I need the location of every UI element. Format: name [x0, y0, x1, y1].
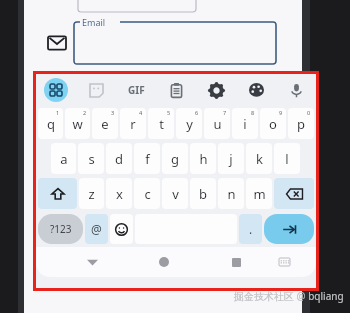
- button[interactable]: d: [106, 143, 132, 174]
- button[interactable]: e: [92, 108, 118, 139]
- button[interactable]: w: [65, 108, 90, 139]
- button[interactable]: Hide keyboard: [272, 247, 296, 277]
- button[interactable]: Apps: [36, 74, 76, 106]
- other: Email: [48, 34, 66, 52]
- staticText: s: [88, 150, 95, 168]
- staticText: 7: [223, 109, 227, 116]
- button[interactable]: t: [148, 108, 174, 139]
- button[interactable]: h: [190, 143, 216, 174]
- staticText: 3: [111, 109, 115, 116]
- button[interactable]: x: [106, 178, 132, 209]
- button[interactable]: Back: [56, 247, 128, 277]
- button[interactable]: z: [79, 178, 104, 209]
- button[interactable]: Shift: [38, 178, 77, 209]
- button[interactable]: b: [190, 178, 216, 209]
- staticText: x: [116, 185, 123, 203]
- staticText: 8: [251, 109, 255, 116]
- staticText: j: [229, 150, 233, 168]
- button[interactable]: Theme: [236, 74, 276, 106]
- button[interactable]: u: [204, 108, 230, 139]
- staticText: g: [171, 150, 179, 168]
- staticText: 掘金技术社区 @ bqliang: [234, 289, 344, 303]
- staticText: 6: [195, 109, 199, 116]
- button[interactable]: Recents: [200, 247, 272, 277]
- button[interactable]: f: [134, 143, 160, 174]
- staticText: @: [91, 221, 102, 237]
- button[interactable]: ?123: [38, 214, 83, 244]
- staticText: c: [144, 185, 151, 203]
- staticText: n: [227, 185, 236, 203]
- button[interactable]: q: [38, 108, 63, 139]
- staticText: y: [186, 115, 193, 133]
- staticText: d: [115, 150, 123, 168]
- button[interactable]: o: [260, 108, 286, 139]
- staticText: u: [213, 115, 222, 133]
- button[interactable]: .: [239, 214, 262, 244]
- staticText: 2: [83, 109, 87, 116]
- button[interactable]: Sticker: [76, 74, 116, 106]
- button[interactable]: c: [134, 178, 160, 209]
- staticText: GIF: [128, 83, 145, 97]
- staticText: z: [88, 185, 95, 203]
- staticText: b: [199, 185, 207, 203]
- button[interactable]: Backspace: [274, 178, 314, 209]
- button[interactable]: g: [162, 143, 188, 174]
- staticText: h: [199, 150, 208, 168]
- button[interactable]: GIF: [116, 74, 156, 106]
- staticText: m: [253, 185, 266, 203]
- button[interactable]: n: [218, 178, 244, 209]
- staticText: i: [243, 115, 247, 133]
- button[interactable]: @: [85, 214, 108, 244]
- staticText: e: [101, 115, 109, 133]
- button[interactable]: Clipboard: [156, 74, 196, 106]
- staticText: 4: [139, 109, 143, 116]
- staticText: 9: [279, 109, 283, 116]
- staticText: t: [159, 115, 164, 133]
- staticText: o: [269, 115, 277, 133]
- button[interactable]: k: [246, 143, 272, 174]
- staticText: ?123: [50, 222, 72, 236]
- button[interactable]: Voice input: [276, 74, 316, 106]
- staticText: 0: [307, 109, 311, 116]
- button[interactable]: m: [246, 178, 272, 209]
- button[interactable]: a: [51, 143, 76, 174]
- staticText: r: [130, 115, 136, 133]
- button[interactable]: Home: [128, 247, 200, 277]
- button[interactable]: Settings: [196, 74, 236, 106]
- staticText: .: [249, 221, 253, 237]
- staticText: Email: [82, 16, 106, 28]
- button[interactable]: l: [274, 143, 300, 174]
- staticText: 5: [167, 109, 171, 116]
- button[interactable]: p: [288, 108, 314, 139]
- button[interactable]: r: [120, 108, 146, 139]
- staticText: f: [145, 150, 150, 168]
- button[interactable]: v: [162, 178, 188, 209]
- staticText: a: [60, 150, 68, 168]
- staticText: 1: [56, 109, 60, 116]
- staticText: l: [285, 150, 289, 168]
- button[interactable]: Emoji: [110, 214, 133, 244]
- button[interactable]: y: [176, 108, 202, 139]
- staticText: k: [256, 150, 263, 168]
- button[interactable]: j: [218, 143, 244, 174]
- button[interactable]: Enter: [264, 214, 314, 244]
- staticText: q: [47, 115, 55, 133]
- staticText: w: [72, 115, 83, 133]
- staticText: p: [297, 115, 305, 133]
- staticText: v: [172, 185, 179, 203]
- button[interactable]: s: [78, 143, 104, 174]
- button[interactable]: i: [232, 108, 258, 139]
